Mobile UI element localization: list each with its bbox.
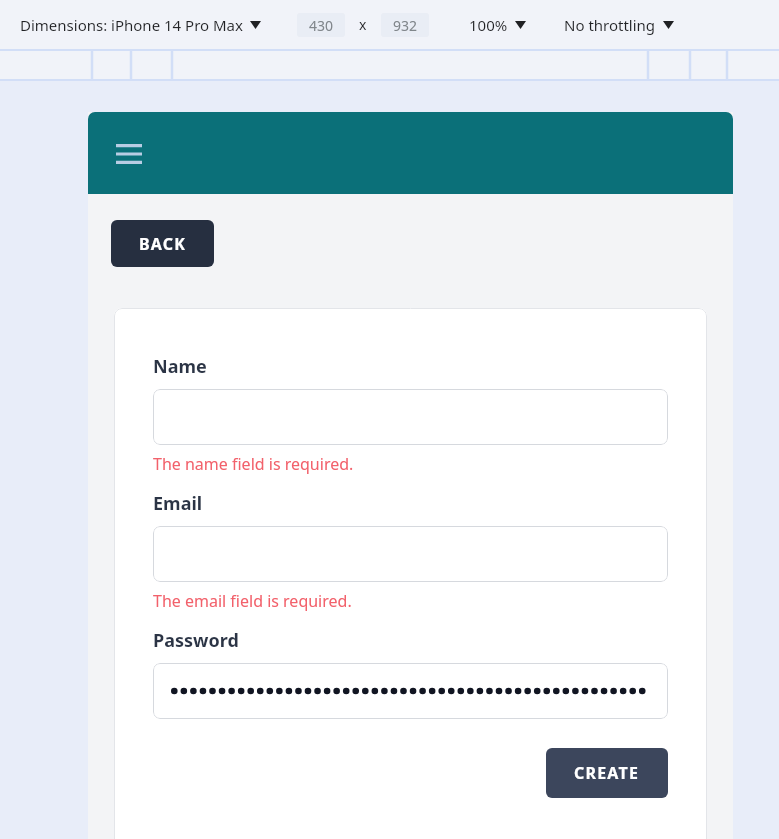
button[interactable]: 932 xyxy=(381,13,429,37)
staticText: No throttling xyxy=(564,15,656,35)
staticText: CREATE xyxy=(574,762,640,784)
button[interactable]: No throttling xyxy=(564,15,674,35)
staticText: The email field is required. xyxy=(153,590,352,612)
staticText: Name xyxy=(153,354,207,379)
button[interactable] xyxy=(153,526,668,582)
staticText: Email xyxy=(153,491,203,516)
button[interactable]: BACK xyxy=(111,220,214,267)
button[interactable]: Dimensions: iPhone 14 Pro Max xyxy=(20,15,261,35)
staticText: 430 xyxy=(309,16,334,35)
button[interactable]: CREATE xyxy=(546,748,668,798)
button[interactable]: Menu xyxy=(108,138,150,170)
staticText: x xyxy=(359,15,367,34)
staticText: Password xyxy=(153,628,239,653)
staticText: The name field is required. xyxy=(153,453,354,475)
staticText: Dimensions: iPhone 14 Pro Max xyxy=(20,15,243,35)
staticText: BACK xyxy=(139,233,187,255)
staticText: 100% xyxy=(469,15,508,35)
button[interactable]: 430 xyxy=(297,13,345,37)
button[interactable] xyxy=(153,389,668,445)
button[interactable]: 100% xyxy=(469,15,526,35)
staticText: 932 xyxy=(393,16,418,35)
button[interactable] xyxy=(153,663,668,719)
